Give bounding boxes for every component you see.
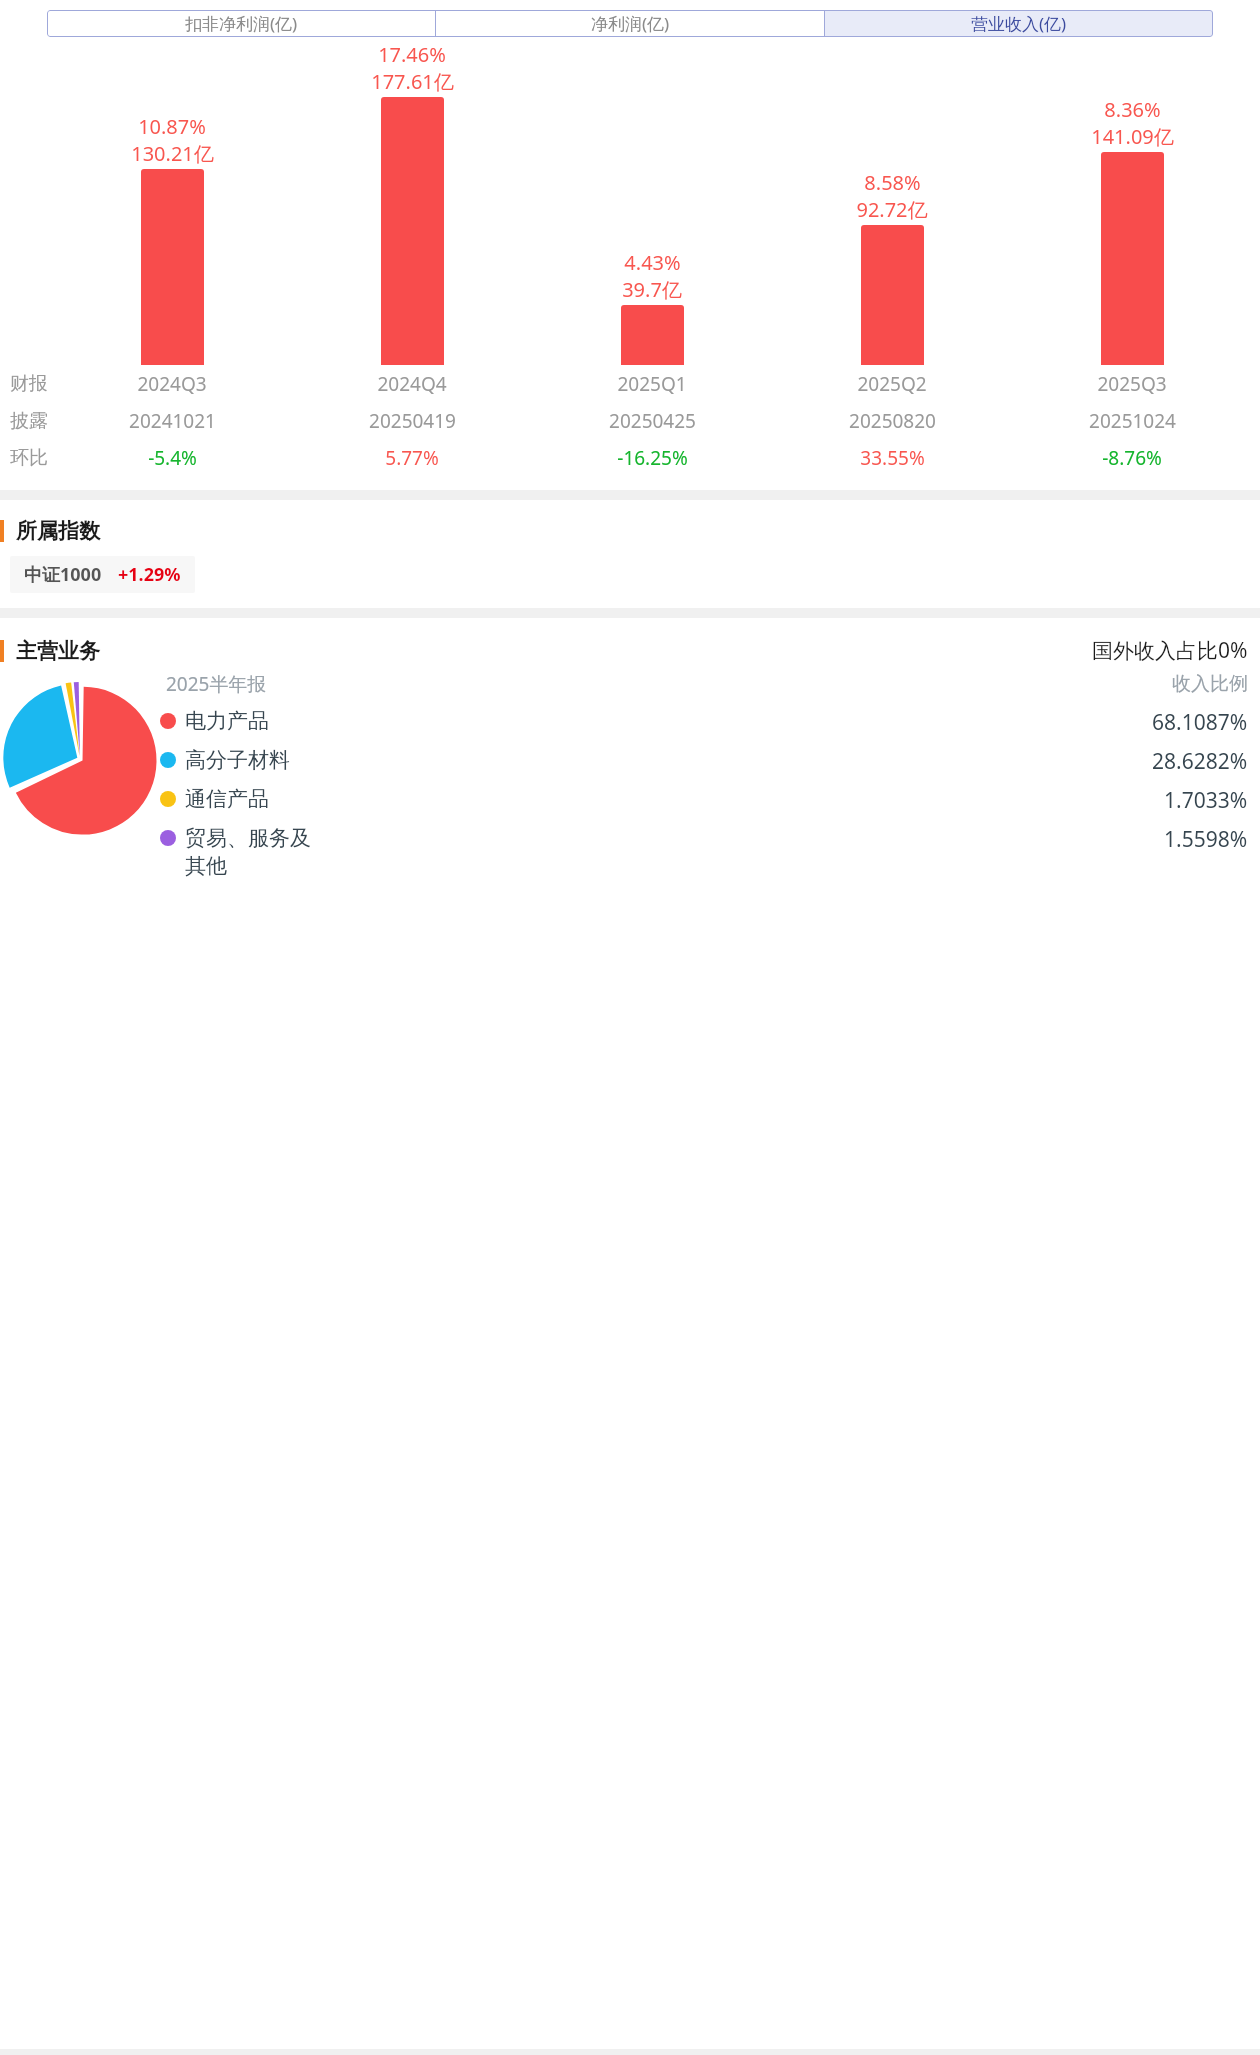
staticText: 贸易、服务及 其他 [185, 825, 1164, 879]
button[interactable]: 营业收入(亿) [825, 10, 1213, 37]
staticText: +1.29% [118, 562, 181, 587]
staticText: -8.76% [1102, 445, 1162, 471]
staticText: 20241021 [129, 408, 216, 434]
button[interactable]: 电力产品 [160, 708, 1248, 737]
staticText: 1.5598% [1164, 825, 1248, 854]
staticText: 1.7033% [1164, 786, 1248, 815]
staticText: 68.1087% [1152, 708, 1248, 737]
staticText: 主营业务 [16, 638, 100, 664]
staticText: 39.7亿 [622, 276, 682, 303]
staticText: 收入比例 [1172, 672, 1248, 696]
staticText: 披露 [10, 409, 48, 433]
staticText: 5.77% [385, 445, 439, 471]
staticText: -5.4% [148, 445, 197, 471]
staticText: 33.55% [860, 445, 925, 471]
button[interactable]: 贸易、服务及 其他 [160, 825, 1248, 879]
button[interactable]: 通信产品 [160, 786, 1248, 815]
staticText: 电力产品 [185, 708, 1152, 734]
button[interactable]: 净利润(亿) [436, 10, 824, 37]
staticText: 高分子材料 [185, 747, 1152, 773]
button[interactable]: 高分子材料 [160, 747, 1248, 776]
staticText: 2024Q4 [377, 371, 447, 397]
staticText: 所属指数 [16, 518, 100, 544]
staticText: 营业收入(亿) [971, 12, 1067, 35]
staticText: 4.43% [624, 249, 681, 276]
button[interactable]: 中证1000 [10, 556, 195, 593]
staticText: 2025Q1 [617, 371, 687, 397]
staticText: 财报 [10, 372, 48, 396]
staticText: 中证1000 [24, 562, 102, 587]
staticText: 177.61亿 [371, 68, 454, 95]
staticText: 2025Q2 [857, 371, 927, 397]
staticText: 8.36% [1104, 96, 1161, 123]
staticText: 20250425 [609, 408, 696, 434]
staticText: 国外收入占比0% [1092, 636, 1248, 665]
staticText: 141.09亿 [1091, 123, 1174, 150]
staticText: 环比 [10, 446, 48, 470]
staticText: 2024Q3 [137, 371, 207, 397]
staticText: 28.6282% [1152, 747, 1248, 776]
staticText: 92.72亿 [856, 196, 928, 223]
staticText: 10.87% [138, 113, 206, 140]
staticText: 17.46% [378, 41, 446, 68]
staticText: 130.21亿 [131, 140, 214, 167]
button[interactable]: 扣非净利润(亿) [47, 10, 435, 37]
staticText: -16.25% [617, 445, 688, 471]
staticText: 2025半年报 [166, 671, 267, 697]
staticText: 通信产品 [185, 786, 1164, 812]
staticText: 2025Q3 [1097, 371, 1167, 397]
staticText: 净利润(亿) [591, 12, 670, 35]
staticText: 20250419 [369, 408, 456, 434]
staticText: 扣非净利润(亿) [185, 12, 298, 35]
staticText: 8.58% [864, 169, 921, 196]
staticText: 20250820 [849, 408, 936, 434]
staticText: 20251024 [1089, 408, 1176, 434]
